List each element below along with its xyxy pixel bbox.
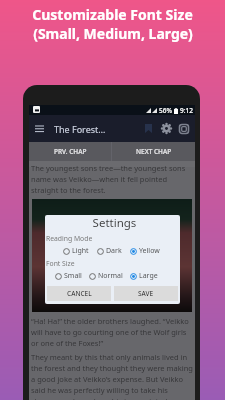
staticText: Dark <box>106 246 122 256</box>
staticText: SAVE <box>138 289 154 298</box>
staticText: Light <box>72 246 89 256</box>
staticText: Yellow <box>139 246 160 256</box>
button[interactable]: Dark <box>97 246 122 256</box>
button[interactable]: Light <box>63 246 89 256</box>
staticText: They meant by this that only animals liv… <box>31 352 193 400</box>
button[interactable]: Normal <box>89 271 123 281</box>
button[interactable]: NEXT CHAP <box>112 142 195 161</box>
staticText: Normal <box>98 271 123 281</box>
button[interactable]: SAVE <box>114 286 178 301</box>
staticText: Settings <box>47 215 180 231</box>
staticText: “Ha! Ha!” the older brothers laughed. “V… <box>31 316 193 348</box>
staticText: (Small, Medium, Large) <box>33 24 193 43</box>
staticText: Large <box>139 271 158 281</box>
button[interactable]: Settings <box>157 115 175 142</box>
button[interactable]: Back <box>175 115 193 142</box>
button[interactable]: Small <box>55 271 82 281</box>
button[interactable]: Large <box>130 271 158 281</box>
button[interactable]: CANCEL <box>47 286 111 301</box>
staticText: 9:12 <box>180 106 193 115</box>
staticText: Font Size <box>46 259 75 268</box>
button[interactable]: Bookmark <box>139 115 157 142</box>
button[interactable]: Yellow <box>130 246 160 256</box>
staticText: NEXT CHAP <box>136 147 172 156</box>
staticText: The Forest… <box>54 123 106 135</box>
button[interactable]: Open navigation menu <box>29 115 50 142</box>
staticText: CANCEL <box>67 289 92 298</box>
button[interactable]: PRV. CHAP <box>29 142 111 161</box>
staticText: The youngest sons tree—the youngest sons… <box>31 163 193 195</box>
staticText: 56% <box>159 106 172 115</box>
staticText: PRV. CHAP <box>54 147 87 156</box>
staticText: Reading Mode <box>46 234 93 243</box>
staticText: Customizable Font Size <box>32 5 193 24</box>
staticText: Small <box>64 271 82 281</box>
